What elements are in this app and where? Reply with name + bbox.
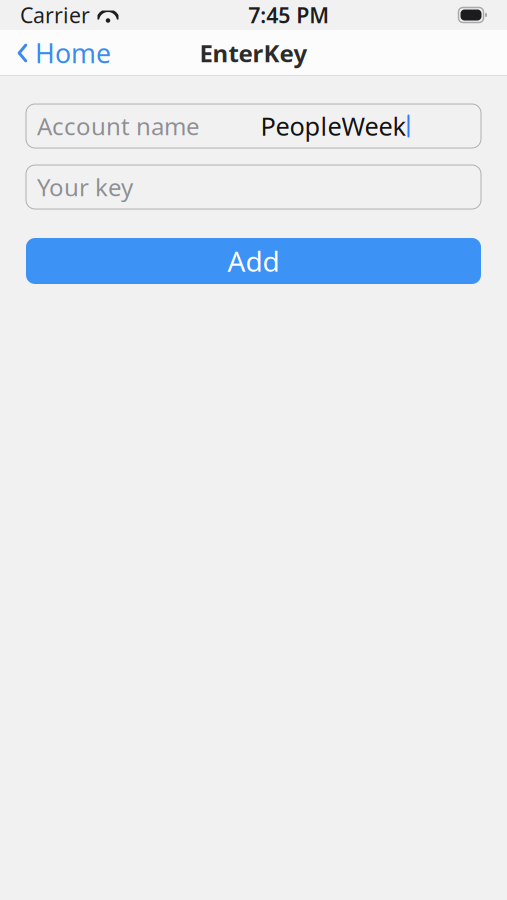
- button[interactable]: Your key: [26, 165, 481, 209]
- staticText: Your key: [37, 171, 133, 203]
- staticText: Account name: [37, 110, 200, 142]
- staticText: Home: [35, 35, 111, 71]
- button[interactable]: Home: [0, 30, 127, 76]
- button[interactable]: Account name: [26, 104, 481, 148]
- staticText: 7:45 PM: [248, 1, 329, 29]
- staticText: Add: [227, 242, 279, 280]
- staticText: PeopleWeek: [260, 109, 406, 143]
- staticText: EnterKey: [199, 37, 307, 69]
- button[interactable]: Add: [26, 238, 481, 284]
- staticText: Carrier: [20, 1, 90, 29]
